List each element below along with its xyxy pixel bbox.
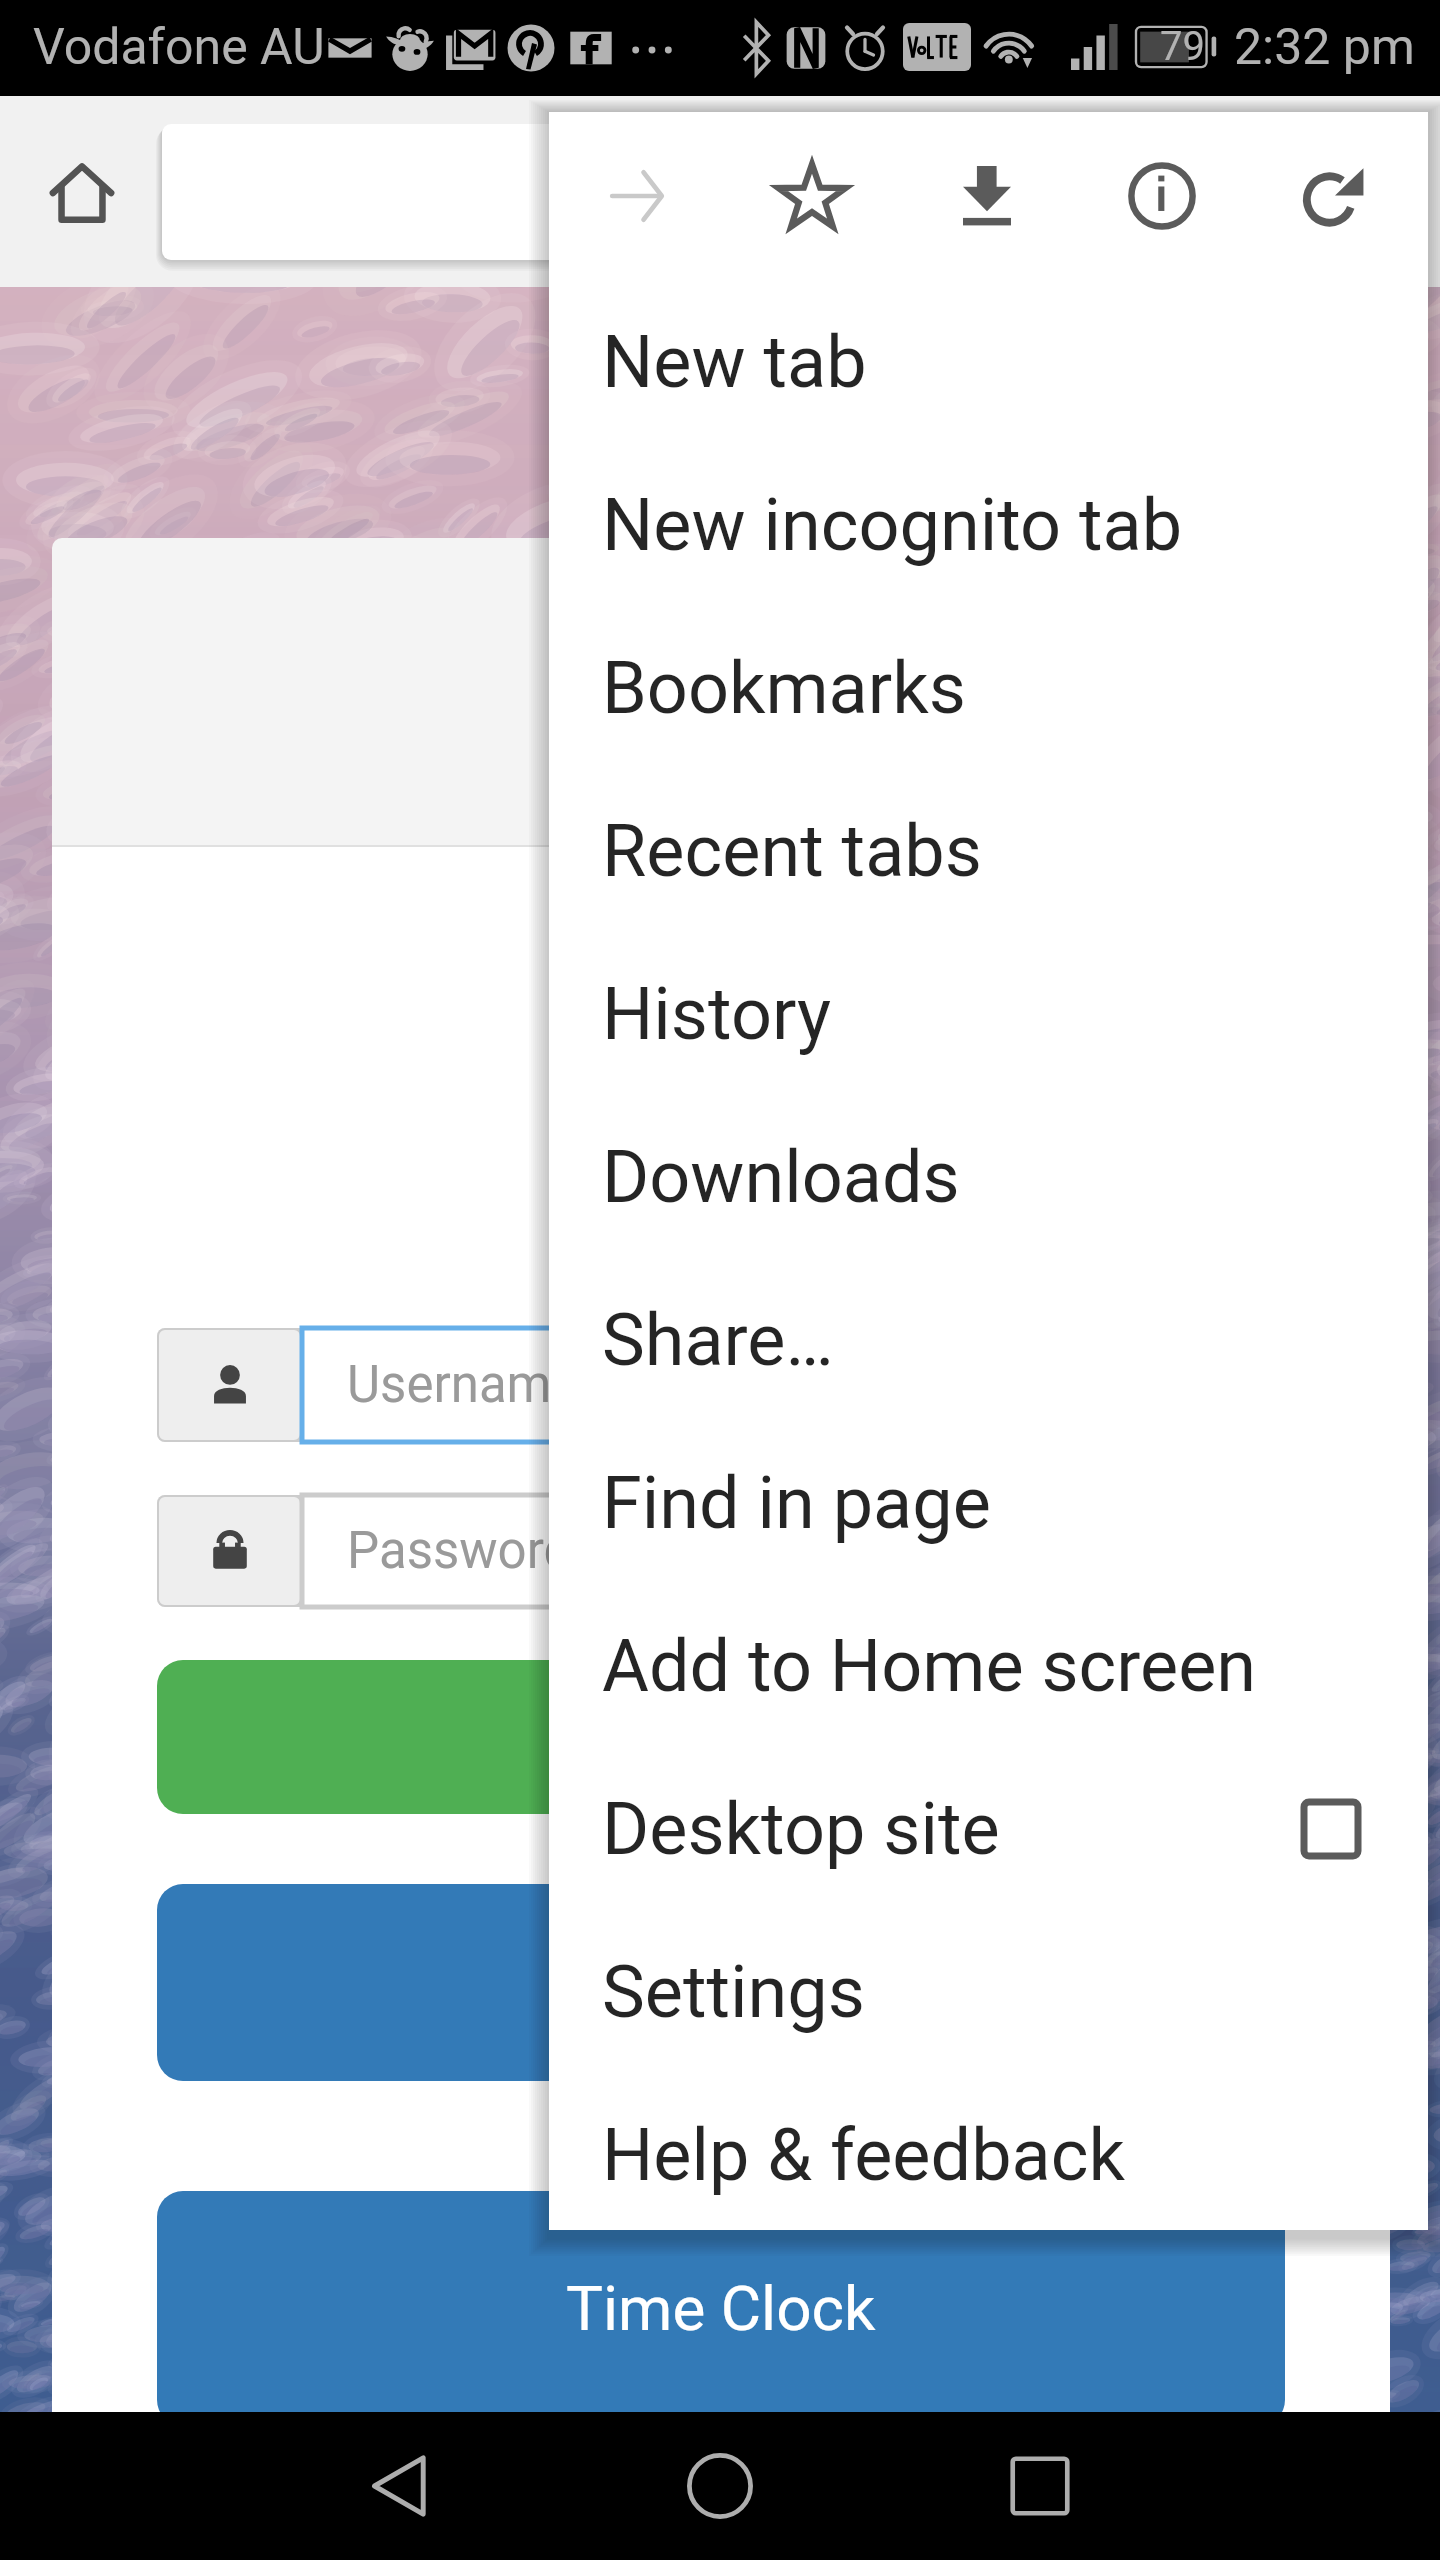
button[interactable]: Recent tabs [549,769,1428,932]
staticText: New tab [602,320,867,404]
button[interactable]: Forward [565,112,709,280]
button[interactable]: New incognito tab [549,443,1428,606]
button[interactable]: Back [325,2412,475,2560]
button[interactable]: Download [915,112,1059,280]
button[interactable]: Share… [549,1258,1428,1421]
button[interactable]: Help & feedback [549,2073,1428,2236]
staticText: Vodafone AU [33,18,325,77]
button[interactable]: Bookmarks [549,606,1428,769]
staticText: Time Clock [566,2272,876,2345]
button[interactable]: Downloads [549,1095,1428,1258]
button[interactable]: Mobile Site [157,1884,1285,2081]
staticText: Username [347,1355,579,1415]
button[interactable]: Time Clock [157,2191,1285,2426]
staticText: 79 [1160,23,1205,70]
button[interactable]: Page info [1090,112,1234,280]
staticText: Help & feedback [602,2113,1125,2197]
staticText: Find in page [602,1461,991,1545]
button[interactable]: Password [302,1495,1285,1607]
staticText: Desktop site [602,1787,1000,1871]
button[interactable]: Settings [549,1910,1428,2073]
staticText: Password [347,1521,573,1581]
button[interactable] [162,124,1062,260]
button[interactable]: Log In [157,1660,1285,1814]
staticText: Bookmarks [602,646,966,730]
button[interactable]: Username [302,1328,1285,1442]
button[interactable]: Bookmark [740,112,884,280]
button[interactable]: Reload [1263,112,1407,280]
button[interactable]: Recents [965,2412,1115,2560]
staticText: Settings [602,1950,865,2034]
button[interactable]: History [549,932,1428,1095]
button[interactable]: Add to Home screen [549,1584,1428,1747]
staticText: Downloads [602,1135,960,1219]
staticText: Add to Home screen [602,1624,1257,1708]
button[interactable]: Find in page [549,1421,1428,1584]
staticText: 2:32 pm [1234,18,1415,77]
staticText: Recent tabs [602,809,982,893]
button[interactable]: Desktop site [549,1747,1428,1910]
button[interactable]: Home [21,131,143,253]
staticText: Share… [602,1298,834,1382]
button[interactable]: New tab [549,280,1428,443]
button[interactable]: Home [645,2412,795,2560]
staticText: Mobile Site [567,1946,875,2019]
staticText: History [602,972,832,1056]
staticText: New incognito tab [602,483,1183,567]
